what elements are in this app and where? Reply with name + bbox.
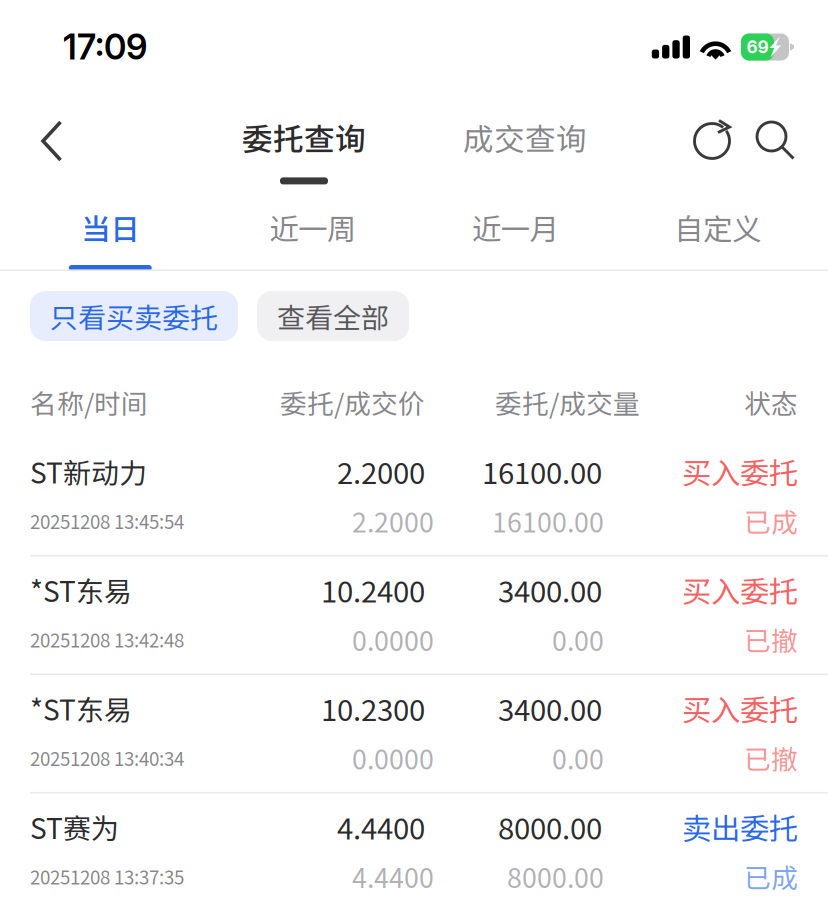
button[interactable]: ST新动力	[0, 438, 828, 556]
staticText: 委托/成交价	[280, 383, 425, 421]
staticText: 已成	[744, 857, 798, 896]
staticText: 买入委托	[682, 687, 798, 729]
staticText: 买入委托	[682, 450, 798, 492]
button[interactable]: 近一月	[414, 188, 616, 271]
staticText: 8000.00	[498, 805, 602, 848]
staticText: *ST东易	[30, 688, 132, 728]
staticText: 16100.00	[482, 450, 602, 492]
button[interactable]: *ST东易	[0, 675, 828, 793]
staticText: 查看全部	[277, 296, 389, 336]
button[interactable]: ST赛为	[0, 793, 828, 900]
staticText: 0.0000	[352, 620, 434, 659]
staticText: 2.2000	[337, 450, 425, 492]
staticText: 4.4400	[352, 857, 434, 896]
button[interactable]: 查看全部	[257, 291, 409, 341]
staticText: 名称/时间	[30, 383, 148, 421]
staticText: 16100.00	[492, 501, 604, 540]
staticText: 已撤	[744, 738, 798, 777]
button[interactable]: *ST东易	[0, 556, 828, 675]
staticText: 4.4400	[337, 805, 425, 848]
staticText: 69	[746, 36, 768, 57]
staticText: 0.00	[552, 620, 604, 659]
staticText: 近一月	[472, 206, 559, 248]
staticText: 3400.00	[498, 568, 602, 611]
staticText: 自定义	[674, 206, 761, 248]
staticText: 卖出委托	[682, 805, 798, 848]
staticText: 近一周	[269, 206, 356, 248]
staticText: 已成	[744, 501, 798, 540]
staticText: 0.0000	[352, 738, 434, 777]
staticText: 成交查询	[463, 115, 587, 159]
staticText: 10.2400	[321, 568, 425, 611]
staticText: 只看买卖委托	[50, 296, 218, 336]
staticText: 20251208 13:40:34	[30, 744, 184, 771]
button[interactable]: 委托查询	[204, 94, 404, 188]
staticText: 10.2300	[321, 687, 425, 729]
staticText: 3400.00	[498, 687, 602, 729]
staticText: *ST东易	[30, 569, 132, 610]
staticText: 0.00	[552, 738, 604, 777]
staticText: 当日	[81, 206, 139, 248]
staticText: 2.2000	[352, 501, 434, 540]
staticText: 委托查询	[242, 115, 366, 159]
button[interactable]: 成交查询	[404, 94, 646, 188]
button[interactable]: 自定义	[616, 188, 819, 271]
button[interactable]: 近一周	[211, 188, 414, 271]
staticText: 委托/成交量	[495, 383, 640, 421]
staticText: 状态	[744, 383, 798, 421]
staticText: 17:09	[63, 26, 147, 68]
staticText: 买入委托	[682, 568, 798, 611]
button[interactable]: 当日	[9, 188, 211, 271]
staticText: 已撤	[744, 620, 798, 659]
button[interactable]: 只看买卖委托	[30, 291, 238, 341]
button[interactable]: Back	[0, 94, 104, 188]
staticText: 20251208 13:42:48	[30, 626, 184, 653]
staticText: ST新动力	[30, 451, 147, 491]
staticText: ST赛为	[30, 806, 119, 847]
button[interactable]: Refresh	[680, 94, 744, 188]
button[interactable]: Search	[744, 94, 808, 188]
staticText: 8000.00	[507, 857, 604, 896]
staticText: 20251208 13:37:35	[30, 863, 184, 890]
staticText: 20251208 13:45:54	[30, 507, 184, 534]
